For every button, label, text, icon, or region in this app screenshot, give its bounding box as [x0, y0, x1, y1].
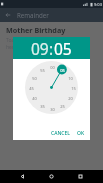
- button[interactable]: Back: [16, 170, 29, 183]
- button[interactable]: OK: [75, 129, 87, 138]
- staticText: 20: [68, 96, 73, 101]
- staticText: 35: [40, 104, 45, 109]
- staticText: 10: [68, 76, 73, 81]
- staticText: 05: [60, 68, 65, 73]
- staticText: 30: [50, 107, 55, 112]
- staticText: 9:03: [94, 2, 102, 7]
- staticText: :: [49, 38, 54, 59]
- staticText: Toady is my mother birthday: [6, 37, 74, 44]
- button[interactable]: Home: [45, 170, 58, 183]
- staticText: 40: [32, 96, 37, 101]
- staticText: 00: [50, 65, 55, 70]
- button[interactable]: 09: [31, 38, 49, 59]
- staticText: 45: [29, 86, 34, 91]
- staticText: Mother Birthday: [6, 25, 66, 35]
- staticText: CANCEL: [51, 130, 70, 137]
- button[interactable]: CANCEL: [49, 129, 72, 138]
- staticText: Remainder: [17, 11, 49, 19]
- staticText: 15: [71, 86, 76, 91]
- button[interactable]: Recent apps: [74, 170, 87, 183]
- staticText: 50: [32, 76, 37, 81]
- staticText: 25: [60, 104, 65, 109]
- button[interactable]: Navigate up: [3, 10, 13, 20]
- staticText: 55: [40, 68, 45, 73]
- staticText: OK: [77, 130, 85, 137]
- button[interactable]: Select minutes: [25, 61, 78, 114]
- button[interactable]: 05: [54, 38, 72, 59]
- staticText: her a: [6, 44, 19, 51]
